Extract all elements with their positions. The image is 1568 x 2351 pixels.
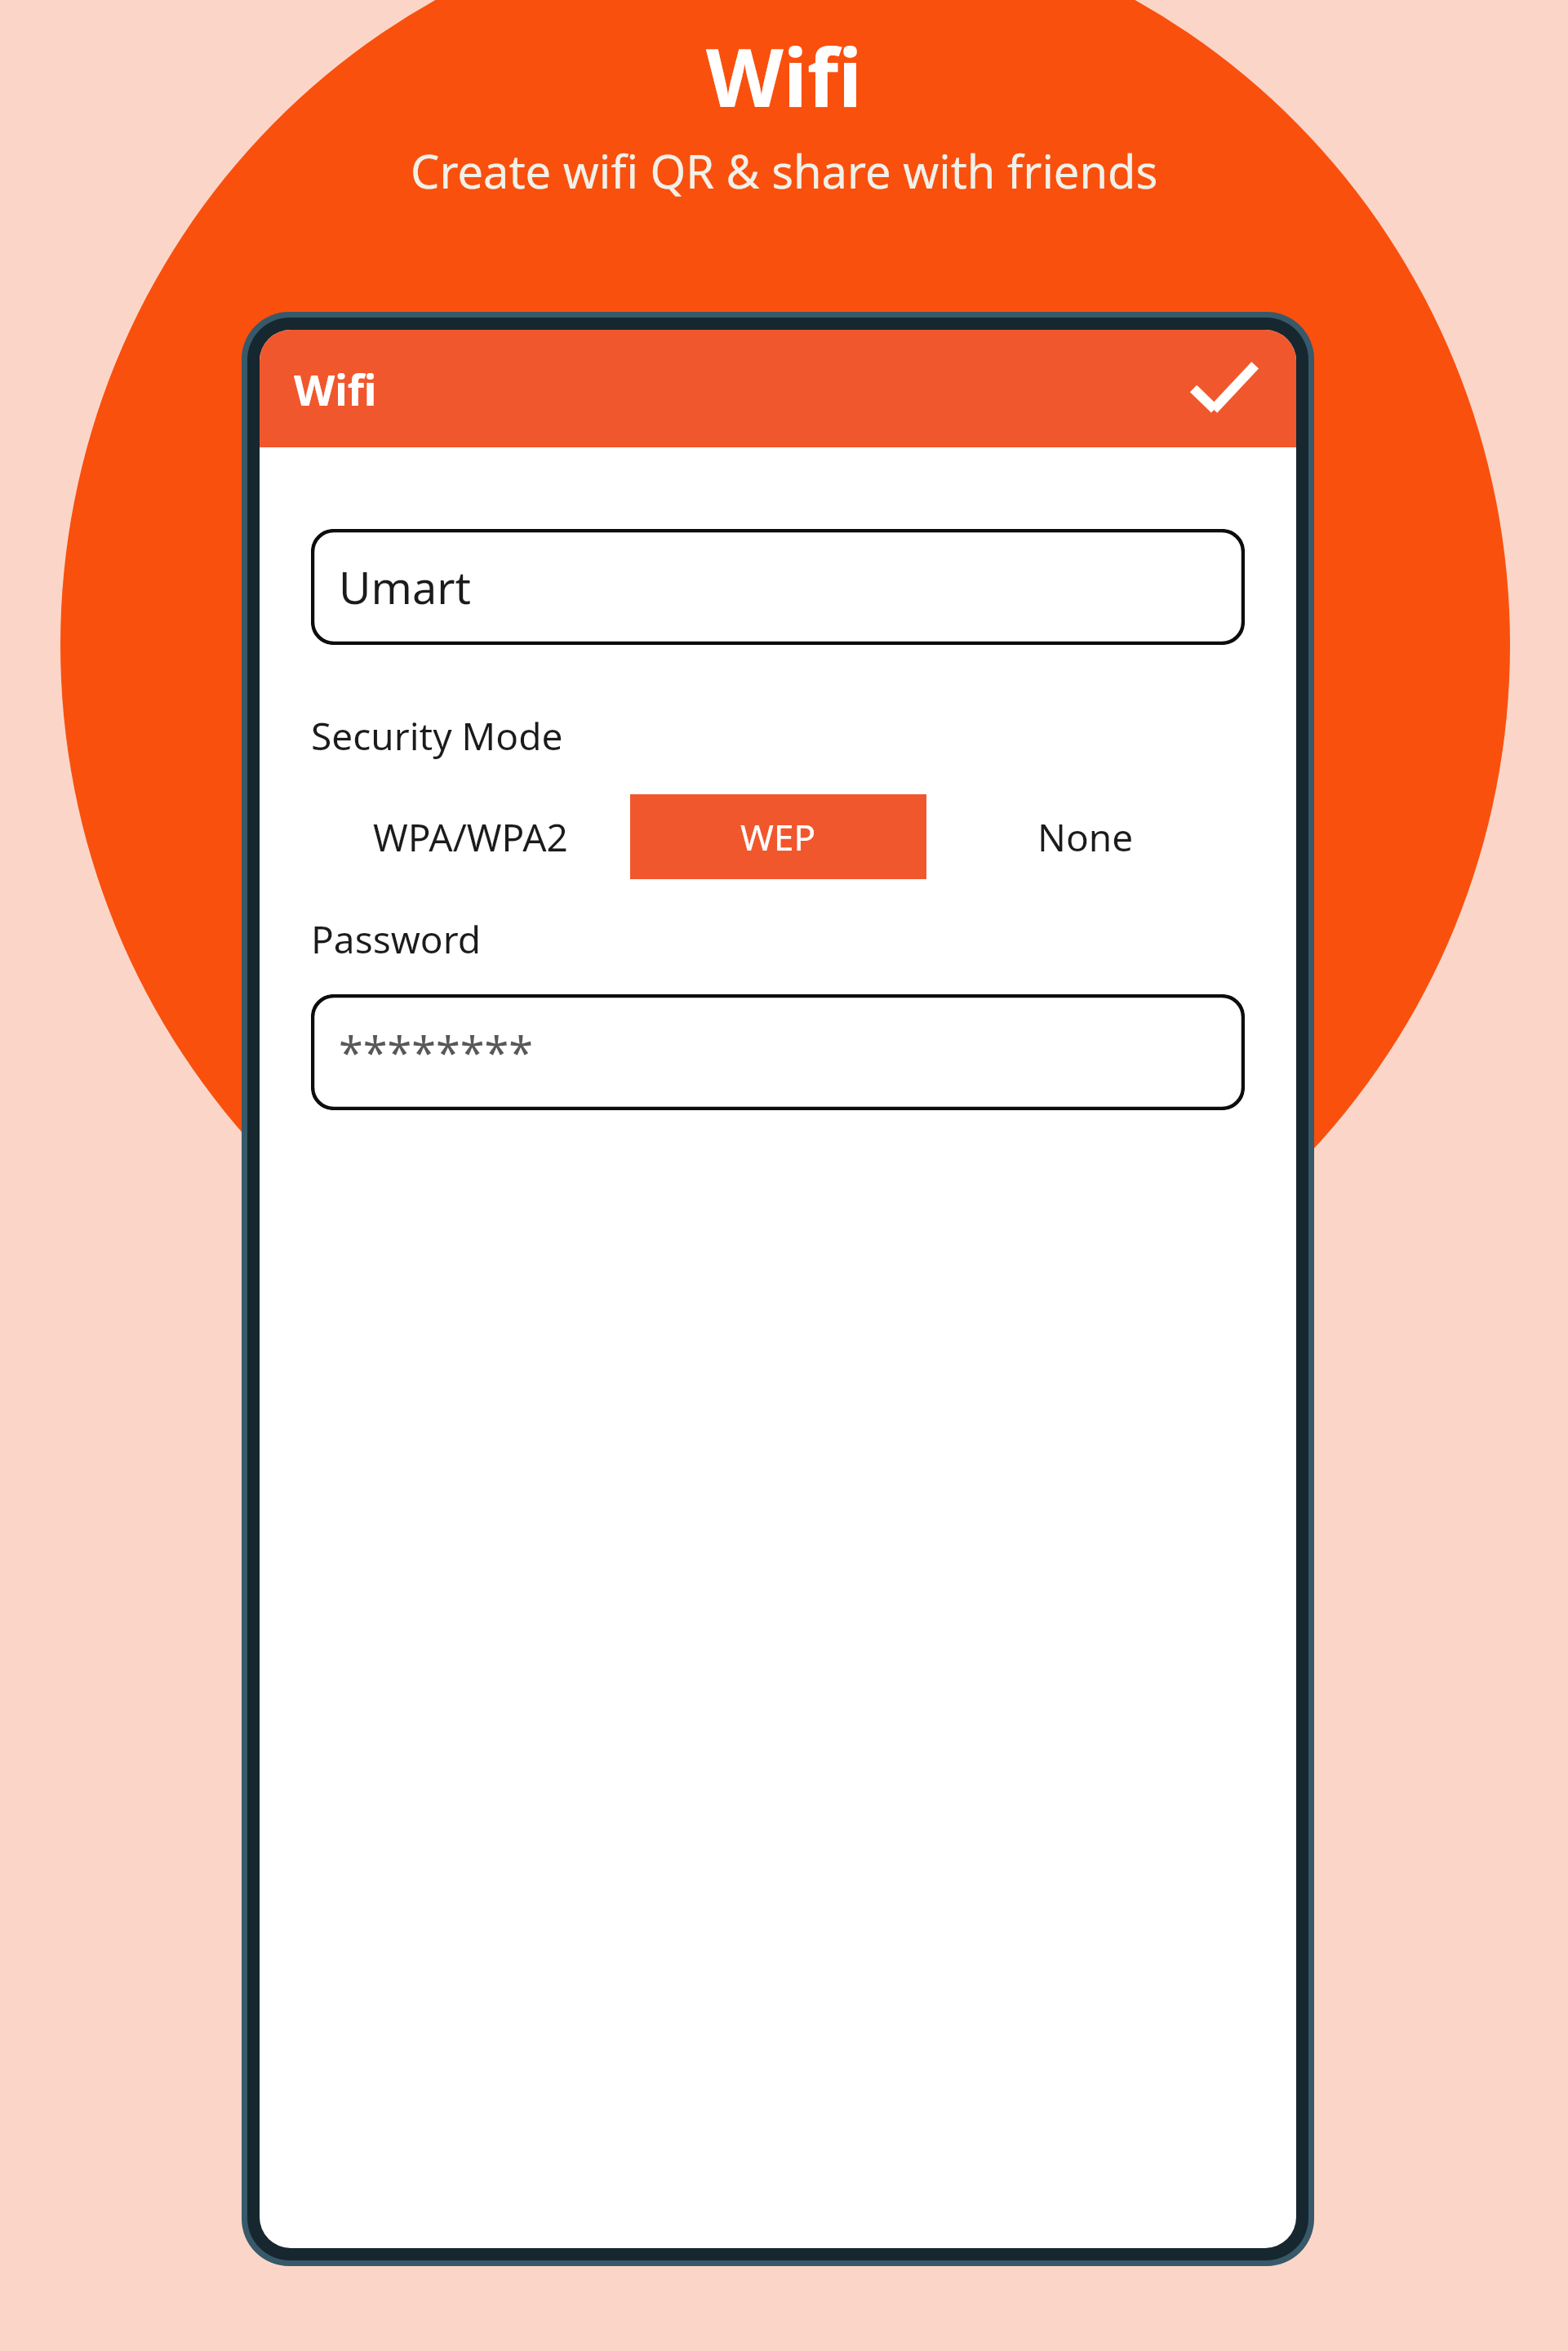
staticText: Create wifi QR & share with friends bbox=[411, 140, 1158, 202]
button[interactable]: WPA/WPA2 bbox=[311, 794, 630, 879]
button[interactable]: WEP bbox=[630, 794, 926, 879]
staticText: Password bbox=[311, 913, 482, 965]
button[interactable]: None bbox=[926, 794, 1245, 879]
staticText: Security Mode bbox=[311, 710, 563, 762]
button[interactable]: Save Wifi bbox=[1175, 340, 1272, 437]
staticText: WEP bbox=[740, 812, 816, 861]
staticText: ******** bbox=[339, 1022, 534, 1082]
staticText: Umart bbox=[339, 557, 472, 617]
button[interactable]: ******** bbox=[311, 994, 1245, 1110]
button[interactable]: Umart bbox=[311, 529, 1245, 645]
staticText: Wifi bbox=[706, 21, 863, 130]
staticText: Wifi bbox=[294, 360, 377, 418]
staticText: None bbox=[1037, 811, 1134, 863]
staticText: WPA/WPA2 bbox=[373, 811, 568, 863]
